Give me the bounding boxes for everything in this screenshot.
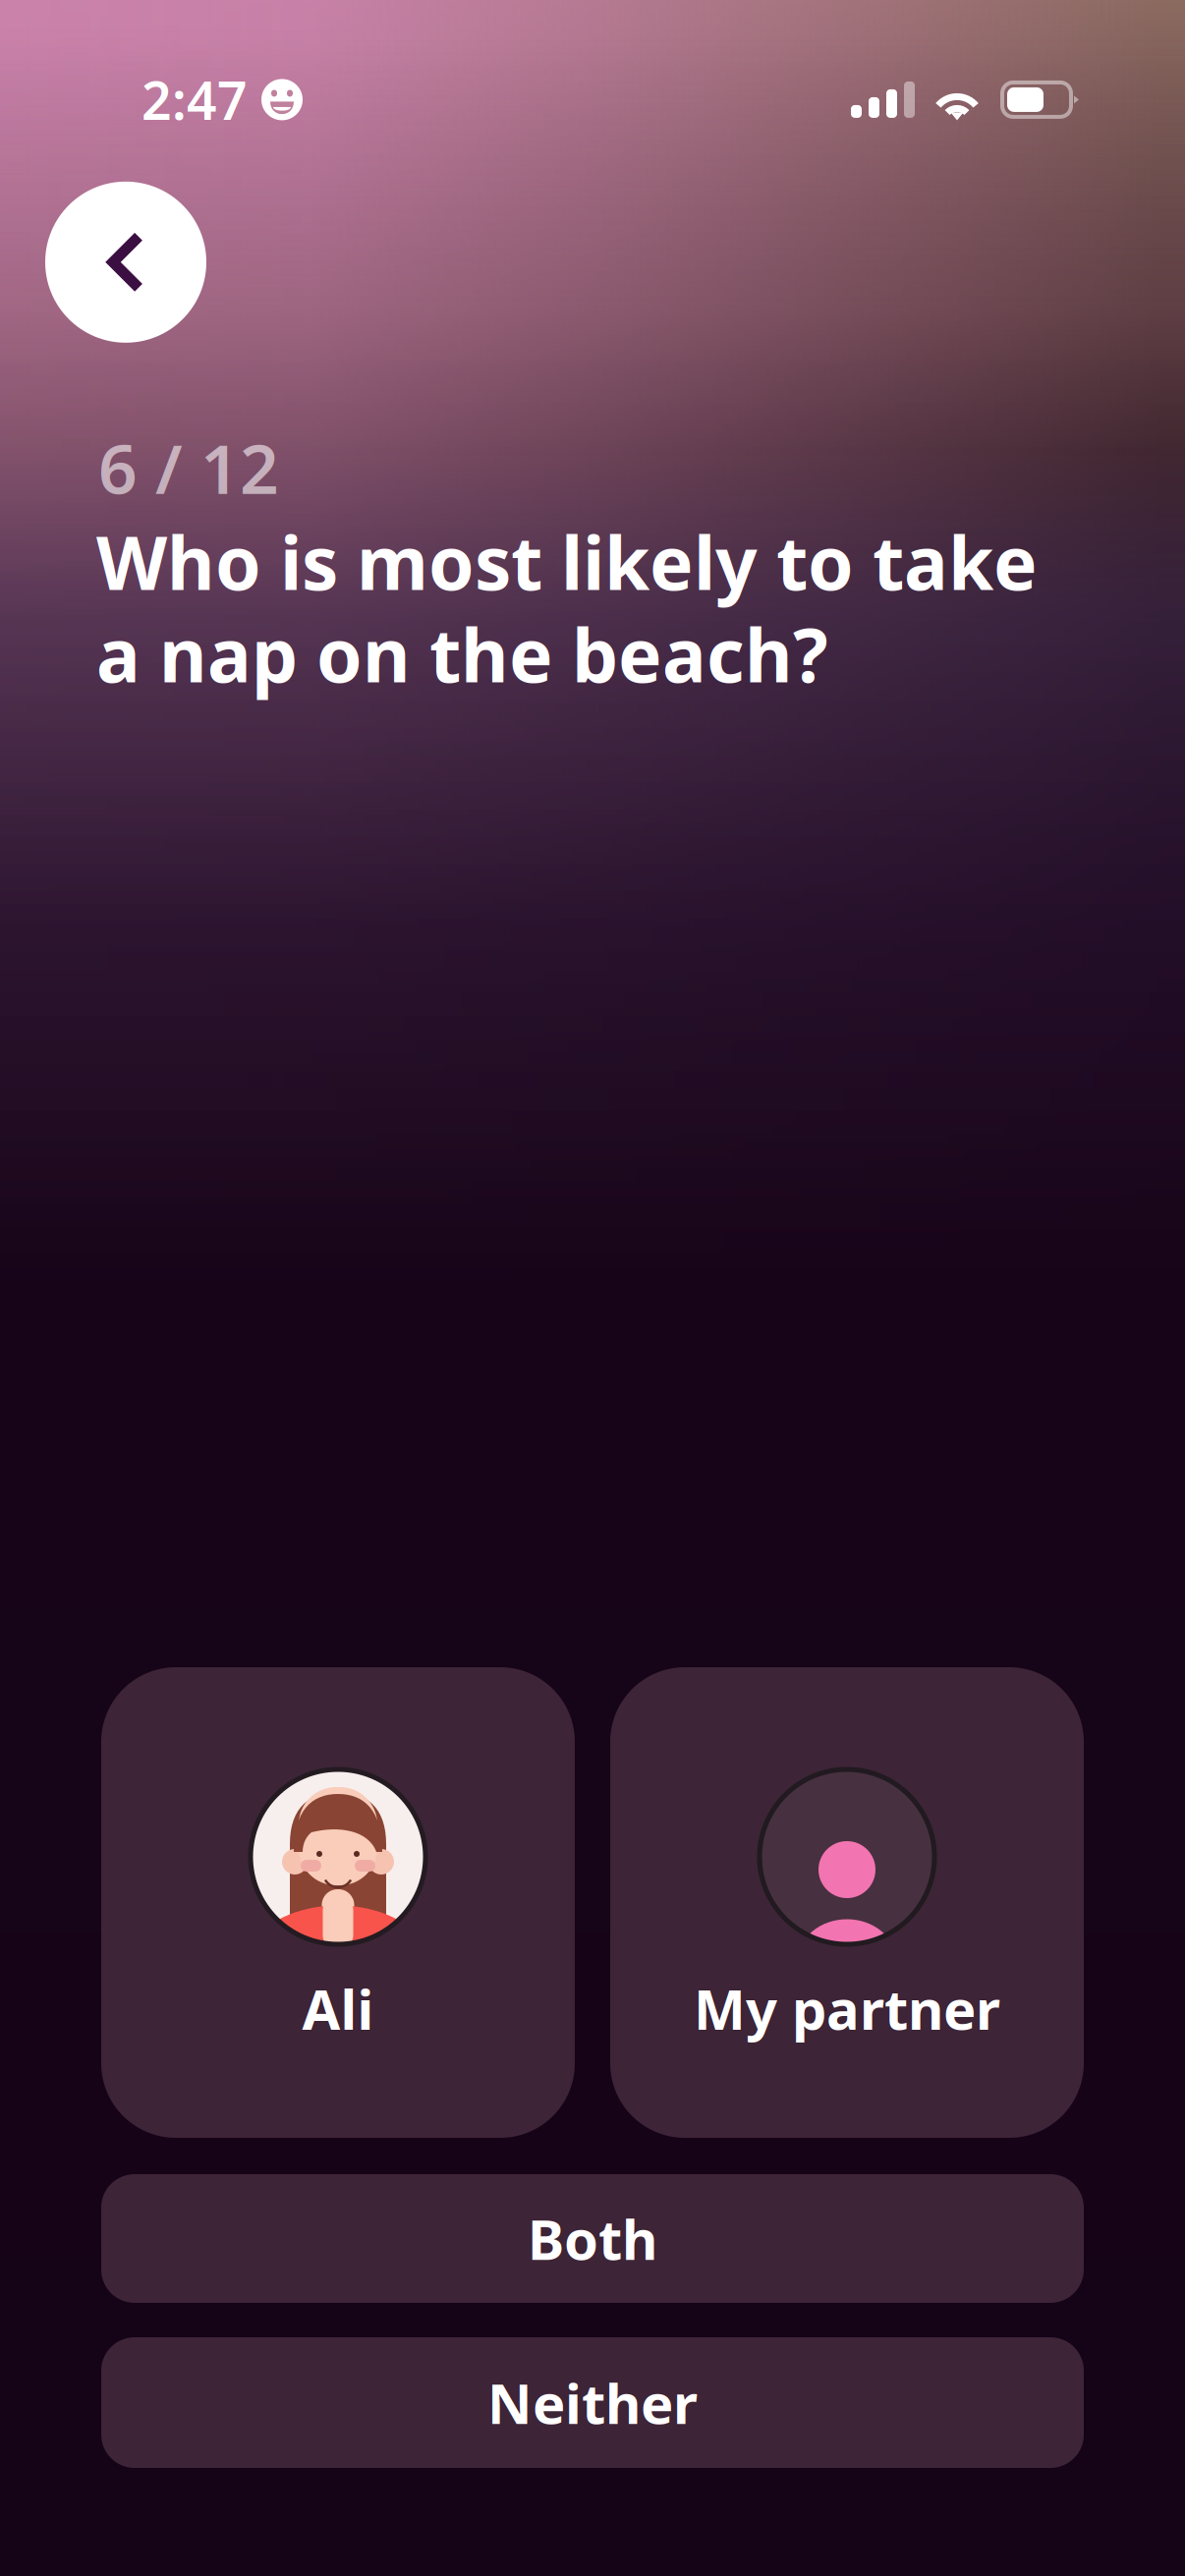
staticText: Ali [302, 1972, 374, 2045]
button[interactable]: My partner [610, 1667, 1084, 2138]
staticText: 6 / 12 [98, 422, 279, 513]
staticText: Who is most likely to take a nap on the … [96, 513, 1038, 703]
button[interactable]: Ali [101, 1667, 575, 2138]
staticText: Neither [487, 2366, 698, 2439]
staticText: Both [528, 2202, 657, 2275]
button[interactable]: Both [101, 2174, 1084, 2303]
staticText: 2:47 [141, 65, 248, 134]
button[interactable]: Back [45, 182, 206, 343]
button[interactable]: Neither [101, 2337, 1084, 2468]
staticText: My partner [694, 1972, 1000, 2045]
